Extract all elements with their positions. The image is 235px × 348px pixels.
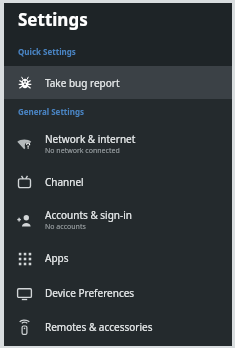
staticText: No accounts — [45, 222, 86, 232]
staticText: Quick Settings — [18, 46, 76, 57]
staticText: No network connected — [45, 146, 120, 156]
button[interactable]: Remotes & accessories — [4, 310, 232, 344]
button[interactable]: Network & internet — [4, 124, 232, 164]
staticText: Device Preferences — [45, 286, 135, 300]
button[interactable]: Device Preferences — [4, 276, 232, 310]
staticText: Remotes & accessories — [45, 320, 153, 334]
button[interactable]: Take bug report — [4, 66, 232, 99]
staticText: Apps — [45, 251, 69, 265]
staticText: General Settings — [18, 106, 85, 117]
staticText: Take bug report — [45, 76, 120, 90]
button[interactable]: Channel — [4, 164, 232, 200]
staticText: Settings — [18, 8, 88, 31]
staticText: Network & internet — [45, 132, 136, 146]
staticText: Accounts & sign-in — [45, 208, 132, 222]
button[interactable]: Accounts & sign-in — [4, 200, 232, 240]
staticText: Channel — [45, 175, 84, 189]
button[interactable]: Apps — [4, 240, 232, 276]
